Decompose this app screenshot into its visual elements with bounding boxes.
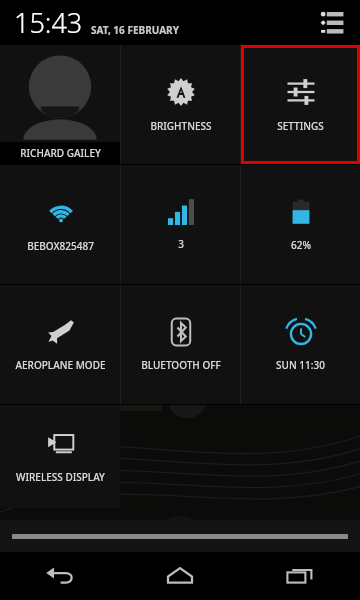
staticText: 3: [178, 237, 184, 251]
staticText: WIRELESS DISPLAY: [16, 470, 105, 484]
button[interactable]: SUN 11:30: [241, 285, 360, 404]
button[interactable]: AEROPLANE MODE: [0, 285, 120, 404]
button[interactable]: BEBOX825487: [0, 165, 120, 284]
staticText: BRIGHTNESS: [150, 119, 212, 133]
staticText: 62%: [291, 238, 311, 252]
staticText: BLUETOOTH OFF: [141, 358, 221, 372]
staticText: SUN 11:30: [276, 358, 325, 372]
button[interactable]: SETTINGS: [241, 45, 360, 164]
button[interactable]: 62%: [241, 165, 360, 284]
button[interactable]: WIRELESS DISPLAY: [0, 405, 120, 508]
button[interactable]: 3: [121, 165, 240, 284]
staticText: SETTINGS: [277, 119, 324, 133]
staticText: BEBOX825487: [27, 239, 94, 253]
button[interactable]: RICHARD GAILEY: [0, 45, 120, 164]
button[interactable]: BRIGHTNESS: [121, 45, 240, 164]
button[interactable]: Notifications list: [314, 5, 350, 41]
staticText: AEROPLANE MODE: [15, 358, 106, 372]
staticText: RICHARD GAILEY: [20, 146, 101, 160]
button[interactable]: BLUETOOTH OFF: [121, 285, 240, 404]
staticText: SAT, 16 FEBRUARY: [91, 23, 179, 37]
button[interactable]: Back: [0, 552, 120, 600]
button[interactable]: Home: [120, 552, 240, 600]
button[interactable]: Recents: [240, 552, 360, 600]
staticText: 15:43: [14, 4, 83, 41]
